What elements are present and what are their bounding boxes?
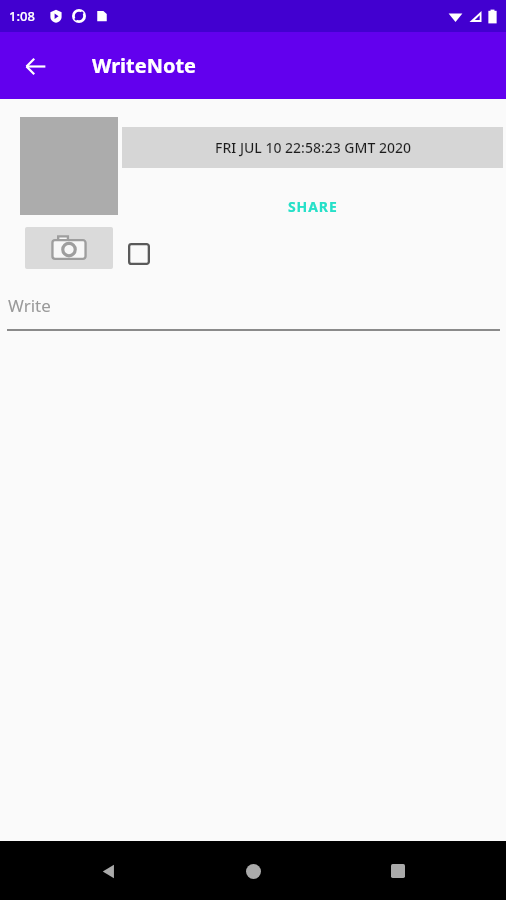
- staticText: 1:08: [9, 7, 35, 25]
- staticText: Write: [8, 294, 51, 317]
- button[interactable]: Recent apps: [374, 847, 422, 895]
- button[interactable]: FRI JUL 10 22:58:23 GMT 2020: [122, 127, 503, 168]
- button[interactable]: Home: [229, 847, 277, 895]
- button[interactable]: Back: [13, 44, 57, 88]
- button[interactable]: SHARE: [122, 186, 503, 226]
- staticText: FRI JUL 10 22:58:23 GMT 2020: [215, 138, 411, 157]
- button[interactable]: Back: [84, 847, 132, 895]
- button[interactable]: Take photo: [25, 227, 113, 269]
- staticText: SHARE: [288, 197, 338, 216]
- button[interactable]: Write: [0, 287, 506, 331]
- button[interactable]: Checkbox: [121, 236, 157, 272]
- staticText: WriteNote: [92, 52, 197, 79]
